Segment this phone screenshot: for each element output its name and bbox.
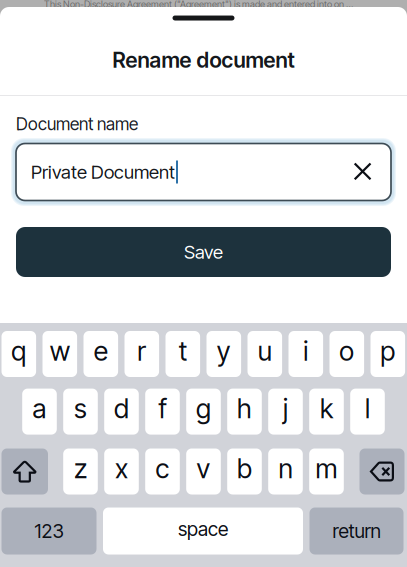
button[interactable]: z bbox=[63, 448, 98, 494]
staticText: s bbox=[74, 392, 87, 425]
button[interactable]: s bbox=[63, 389, 98, 435]
staticText: Save bbox=[184, 241, 223, 263]
staticText: r bbox=[137, 335, 146, 367]
button[interactable]: u bbox=[247, 331, 282, 377]
staticText: w bbox=[50, 335, 70, 367]
button[interactable]: i bbox=[288, 331, 323, 377]
button[interactable]: o bbox=[329, 331, 364, 377]
staticText: j bbox=[283, 392, 288, 425]
button[interactable]: space bbox=[103, 507, 303, 554]
staticText: x bbox=[115, 452, 128, 485]
button[interactable]: q bbox=[1, 331, 36, 377]
staticText: b bbox=[237, 452, 252, 485]
button[interactable]: t bbox=[165, 331, 200, 377]
button[interactable]: v bbox=[186, 448, 221, 494]
staticText: e bbox=[94, 335, 108, 367]
staticText: o bbox=[339, 335, 354, 367]
button[interactable]: d bbox=[104, 389, 139, 435]
button[interactable]: w bbox=[42, 331, 77, 377]
staticText: h bbox=[237, 392, 252, 425]
button[interactable]: Save bbox=[16, 227, 391, 277]
staticText: k bbox=[320, 392, 333, 425]
staticText: return bbox=[332, 519, 380, 543]
staticText: d bbox=[114, 392, 129, 425]
button[interactable]: y bbox=[206, 331, 241, 377]
staticText: n bbox=[278, 452, 292, 485]
button[interactable]: h bbox=[227, 389, 262, 435]
staticText: Document name bbox=[16, 113, 138, 134]
button[interactable]: 123 bbox=[1, 507, 96, 554]
staticText: u bbox=[258, 335, 272, 367]
button[interactable]: f bbox=[145, 389, 180, 435]
staticText: z bbox=[74, 452, 87, 485]
button[interactable]: Delete bbox=[359, 448, 404, 494]
staticText: 123 bbox=[34, 519, 63, 543]
staticText: a bbox=[32, 392, 46, 425]
staticText: This Non-Disclosure Agreement ("Agreemen… bbox=[44, 0, 354, 10]
staticText: m bbox=[315, 452, 337, 485]
staticText: Private Document bbox=[31, 161, 175, 183]
staticText: i bbox=[303, 335, 308, 367]
staticText: space bbox=[178, 517, 228, 541]
button[interactable]: c bbox=[145, 448, 180, 494]
button[interactable]: Clear text bbox=[341, 149, 385, 193]
button[interactable]: e bbox=[83, 331, 118, 377]
button[interactable]: Shift bbox=[1, 448, 48, 494]
staticText: t bbox=[179, 335, 187, 367]
staticText: y bbox=[217, 335, 231, 367]
staticText: c bbox=[155, 452, 169, 485]
staticText: p bbox=[380, 335, 395, 367]
staticText: Rename document bbox=[112, 47, 294, 73]
button[interactable]: x bbox=[104, 448, 139, 494]
staticText: v bbox=[196, 452, 210, 485]
button[interactable]: return bbox=[309, 507, 403, 554]
button[interactable]: j bbox=[268, 389, 303, 435]
button[interactable]: n bbox=[268, 448, 303, 494]
staticText: f bbox=[158, 392, 166, 425]
button[interactable]: a bbox=[22, 389, 57, 435]
staticText: q bbox=[11, 335, 26, 367]
staticText: l bbox=[365, 392, 370, 425]
button[interactable]: g bbox=[186, 389, 221, 435]
button[interactable]: m bbox=[309, 448, 344, 494]
button[interactable]: r bbox=[124, 331, 159, 377]
button[interactable]: k bbox=[309, 389, 344, 435]
button[interactable]: l bbox=[350, 389, 385, 435]
button[interactable]: b bbox=[227, 448, 262, 494]
button[interactable]: p bbox=[370, 331, 405, 377]
staticText: g bbox=[196, 392, 211, 425]
